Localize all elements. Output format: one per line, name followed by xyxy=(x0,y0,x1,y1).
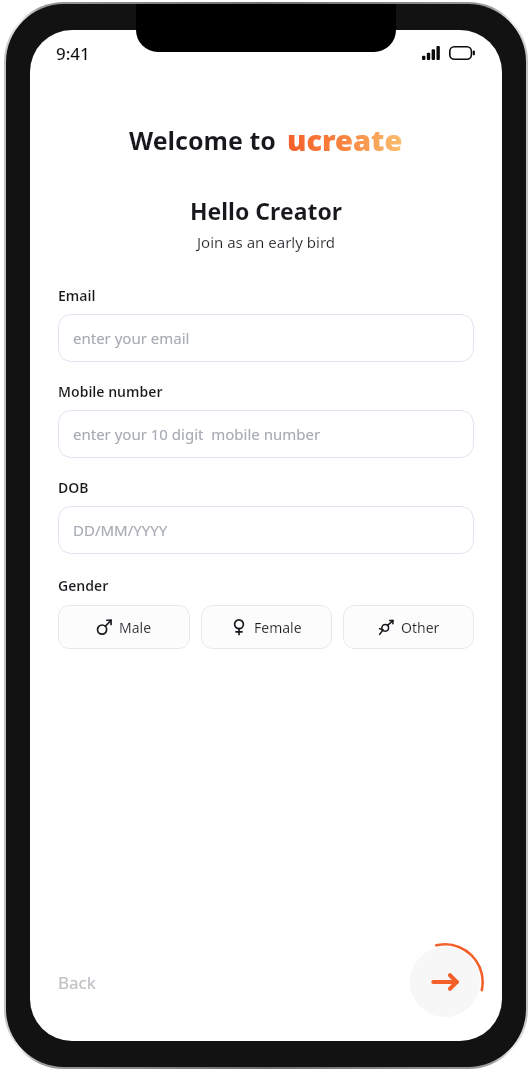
staticText: 9:41 xyxy=(56,42,90,65)
staticText: Mobile number xyxy=(58,382,163,401)
button[interactable]: enter your 10 digit mobile number xyxy=(58,410,474,458)
staticText: DD/MM/YYYY xyxy=(73,520,168,540)
staticText: Email xyxy=(58,286,96,305)
staticText: enter your email xyxy=(73,328,190,348)
button[interactable]: DD/MM/YYYY xyxy=(58,506,474,554)
staticText: Other xyxy=(401,618,440,637)
staticText: Male xyxy=(119,618,152,637)
staticText: Female xyxy=(254,618,302,637)
staticText: enter your 10 digit mobile number xyxy=(73,424,321,444)
button[interactable]: Next xyxy=(406,943,484,1021)
staticText: Welcome to xyxy=(129,123,276,157)
staticText: Hello Creator xyxy=(30,195,502,226)
staticText: Join as an early bird xyxy=(30,232,502,252)
staticText: ucreate xyxy=(287,120,403,159)
button[interactable]: Back xyxy=(50,963,104,1002)
staticText: DOB xyxy=(58,478,89,497)
button[interactable]: enter your email xyxy=(58,314,474,362)
staticText: Back xyxy=(58,971,96,994)
button[interactable]: Male xyxy=(58,605,190,649)
button[interactable]: Other xyxy=(343,605,474,649)
staticText: Gender xyxy=(58,576,109,595)
button[interactable]: Female xyxy=(201,605,332,649)
